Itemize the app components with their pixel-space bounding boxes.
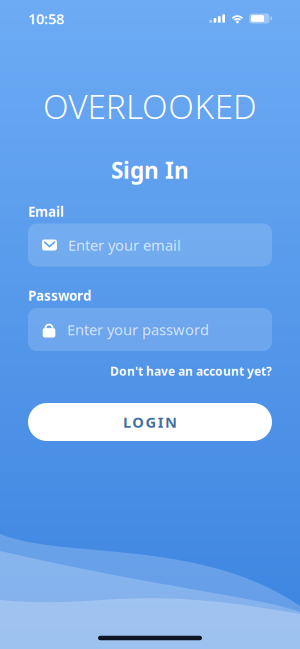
staticText: Don't have an account yet? [110,363,272,379]
staticText: Enter your email [68,235,181,255]
button[interactable]: Enter your password [28,308,272,351]
staticText: Password [28,287,91,304]
staticText: Sign In [111,155,189,185]
button[interactable]: LOGIN [28,403,272,441]
button[interactable]: Don't have an account yet? [28,363,272,379]
staticText: Enter your password [67,320,209,339]
staticText: OVERLOOKED [43,84,257,128]
staticText: 10:58 [28,9,64,28]
staticText: Email [28,203,64,220]
button[interactable]: Enter your email [28,223,272,266]
staticText: LOGIN [123,412,177,432]
